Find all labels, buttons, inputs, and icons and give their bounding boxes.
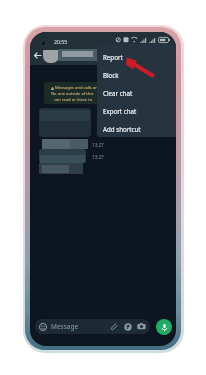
button[interactable]: Report	[97, 48, 176, 66]
staticText: No one outside of this	[51, 91, 94, 97]
staticText: Report	[103, 53, 123, 61]
button[interactable]: Export chat	[97, 102, 176, 120]
staticText: Add shortcut	[103, 125, 141, 133]
staticText: 13:27	[92, 154, 104, 160]
button[interactable]: Back	[31, 49, 43, 61]
button[interactable]: Record voice message	[156, 319, 172, 335]
staticText: Message	[51, 322, 79, 331]
staticText: 20:55	[54, 38, 68, 45]
staticText: Clear chat	[103, 89, 133, 97]
staticText: can read or listen to	[54, 97, 93, 103]
staticText: Export chat	[103, 107, 137, 115]
staticText: 13:27	[92, 142, 104, 148]
staticText: Block	[103, 71, 119, 79]
button[interactable]: Add shortcut	[97, 120, 176, 137]
button[interactable]: Block	[97, 66, 176, 84]
button[interactable]: Clear chat	[97, 84, 176, 102]
button[interactable]: Message	[35, 319, 150, 334]
staticText: Messages and calls are	[55, 85, 100, 91]
